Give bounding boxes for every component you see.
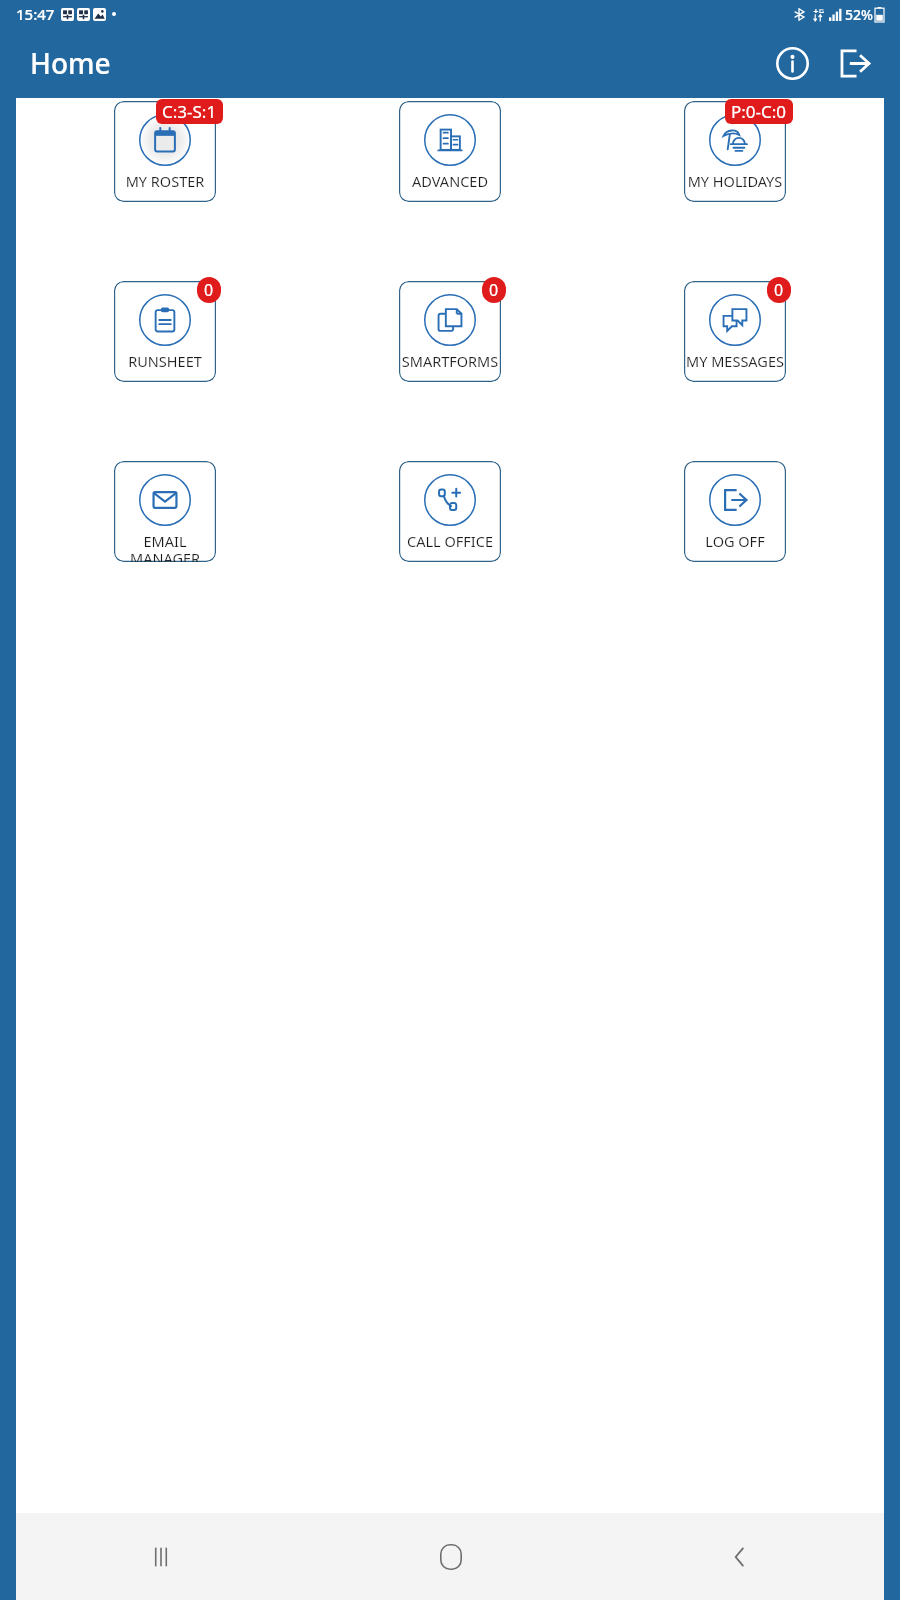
button[interactable]: LOG OFF [684,461,786,562]
button[interactable]: CALL OFFICE [399,461,501,562]
staticText: 0 [774,279,784,301]
button[interactable]: Back [595,1513,884,1600]
button[interactable]: EMAIL MANAGER [114,461,216,562]
staticText: 52% [845,5,873,24]
staticText: MY ROSTER [116,171,214,191]
button[interactable]: ADVANCED [399,101,501,202]
button[interactable]: MY HOLIDAYS [684,101,786,202]
staticText: MY MESSAGES [686,351,784,371]
staticText: EMAIL MANAGER [116,531,214,562]
staticText: MY HOLIDAYS [686,171,784,191]
staticText: Home [30,44,111,82]
button[interactable]: MY MESSAGES [684,281,786,382]
staticText: CALL OFFICE [401,531,499,551]
staticText: P:0-C:0 [731,100,787,123]
staticText: C:3-S:1 [162,100,217,123]
button[interactable]: Information [768,39,816,87]
staticText: RUNSHEET [116,351,214,371]
button[interactable]: Home [306,1513,595,1600]
button[interactable]: MY ROSTER [114,101,216,202]
staticText: LOG OFF [686,531,784,551]
staticText: SMARTFORMS [401,351,499,371]
staticText: 0 [204,279,214,301]
staticText: 15:47 [16,4,55,24]
button[interactable]: RUNSHEET [114,281,216,382]
staticText: 0 [489,279,499,301]
button[interactable]: SMARTFORMS [399,281,501,382]
button[interactable]: Recent apps [16,1513,306,1600]
button[interactable]: Log out [830,39,878,87]
staticText: ADVANCED [401,171,499,191]
